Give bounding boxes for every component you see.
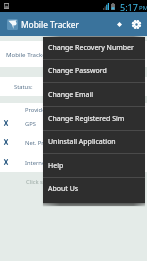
staticText: Status: [14, 83, 33, 91]
staticText: Change Password [48, 66, 107, 76]
button[interactable]: Change Email [43, 83, 145, 107]
staticText: Change Registered Sim [48, 114, 125, 124]
button[interactable]: Change Registered Sim [43, 107, 145, 131]
button[interactable]: GPS [0, 119, 147, 131]
staticText: Mobile Tracker [21, 19, 80, 30]
staticText: Change Recovery Number [48, 43, 134, 53]
staticText: Click start to begin [26, 178, 77, 186]
staticText: Uninstall Application [48, 137, 116, 147]
staticText: Provider [25, 106, 48, 114]
button[interactable]: Help [43, 154, 145, 178]
staticText: Mobile Tracker Application [6, 50, 82, 58]
button[interactable]: Uninstall Application [43, 130, 145, 154]
button[interactable]: Internet [0, 158, 147, 170]
button[interactable]: Change Recovery Number [43, 37, 145, 59]
staticText: Net. Provider [25, 139, 61, 147]
staticText: PM [139, 4, 147, 12]
button[interactable]: Change Password [43, 59, 145, 83]
button[interactable]: Net. Provider [0, 138, 147, 150]
button[interactable]: More options [112, 12, 126, 36]
button[interactable]: Settings [129, 12, 143, 36]
staticText: Internet [25, 159, 48, 167]
staticText: Change Email [48, 90, 94, 100]
button[interactable]: About Us [43, 177, 145, 202]
staticText: 5:17 [120, 1, 138, 13]
staticText: GPS [25, 120, 36, 128]
staticText: Help [48, 161, 64, 171]
staticText: About Us [48, 184, 79, 194]
